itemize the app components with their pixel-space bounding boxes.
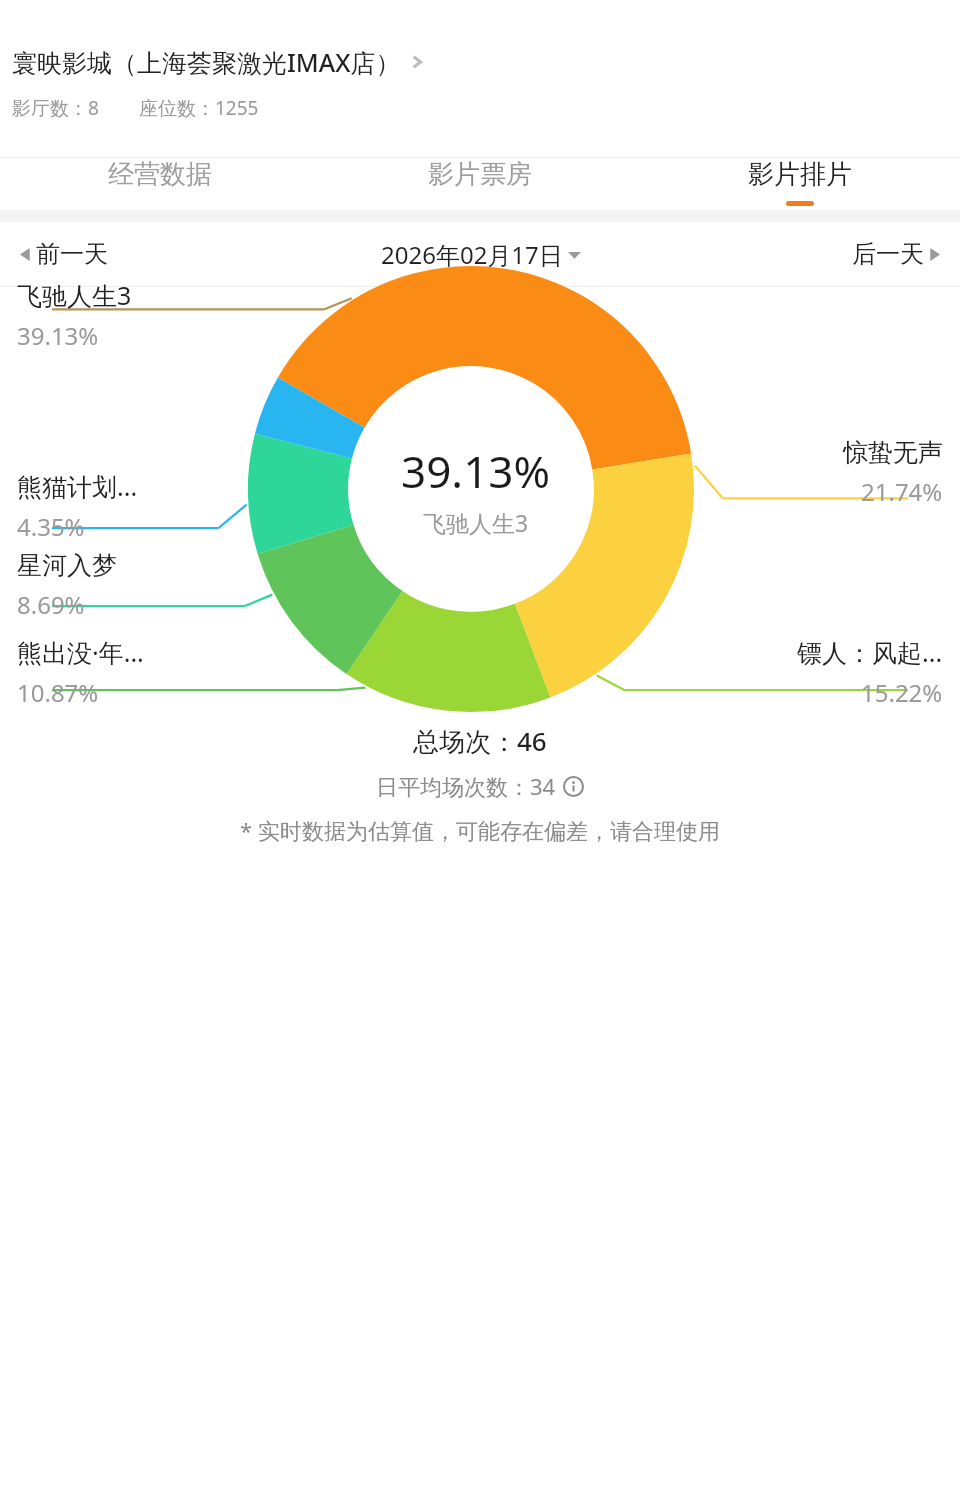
staticText: 后一天 xyxy=(852,239,924,269)
staticText: * 实时数据为估算值，可能存在偏差，请合理使用 xyxy=(240,815,720,845)
button[interactable]: 前一天 xyxy=(0,239,296,269)
staticText: 惊蛰无声 xyxy=(843,437,943,468)
staticText: 影片票房 xyxy=(428,158,532,191)
staticText: 21.74% xyxy=(861,475,943,508)
staticText: 前一天 xyxy=(36,239,108,269)
staticText: 座位数：1255 xyxy=(139,95,259,121)
staticText: 星河入梦 xyxy=(17,550,117,581)
staticText: 熊出没·年... xyxy=(17,635,144,669)
staticText: 2026年02月17日 xyxy=(381,238,563,271)
other: Open cinema detail xyxy=(407,52,427,72)
staticText: 15.22% xyxy=(861,676,943,709)
staticText: 10.87% xyxy=(17,676,99,709)
staticText: 总场次：46 xyxy=(413,723,547,759)
staticText: 镖人：风起... xyxy=(797,635,943,669)
staticText: 8.69% xyxy=(17,588,85,621)
staticText: 飞驰人生3 xyxy=(17,278,132,312)
button[interactable]: 寰映影城（上海荟聚激光IMAX店） xyxy=(0,0,960,113)
staticText: 39.13% xyxy=(401,441,551,501)
button[interactable]: 惊蛰无声 xyxy=(843,437,943,508)
staticText: 影厅数：8 xyxy=(12,95,99,121)
staticText: 影片排片 xyxy=(748,158,852,191)
staticText: 日平均场次数：34 xyxy=(376,771,556,801)
button[interactable]: 熊猫计划... xyxy=(17,469,138,543)
staticText: 飞驰人生3 xyxy=(423,507,529,538)
button[interactable]: 2026年02月17日 xyxy=(296,238,665,271)
staticText: 寰映影城（上海荟聚激光IMAX店） xyxy=(12,45,401,79)
button[interactable]: 飞驰人生3 xyxy=(17,278,132,352)
button[interactable]: 影片排片 xyxy=(640,158,960,206)
staticText: 39.13% xyxy=(17,319,99,352)
button[interactable]: 经营数据 xyxy=(0,158,320,206)
button[interactable]: Info about daily average xyxy=(563,776,584,797)
staticText: 经营数据 xyxy=(108,158,212,191)
button[interactable]: 镖人：风起... xyxy=(797,635,943,709)
button[interactable]: 后一天 xyxy=(665,239,960,269)
button[interactable]: 星河入梦 xyxy=(17,550,117,621)
staticText: 4.35% xyxy=(17,510,85,543)
button[interactable]: 熊出没·年... xyxy=(17,635,144,709)
staticText: 熊猫计划... xyxy=(17,469,138,503)
button[interactable]: 影片票房 xyxy=(320,158,640,206)
